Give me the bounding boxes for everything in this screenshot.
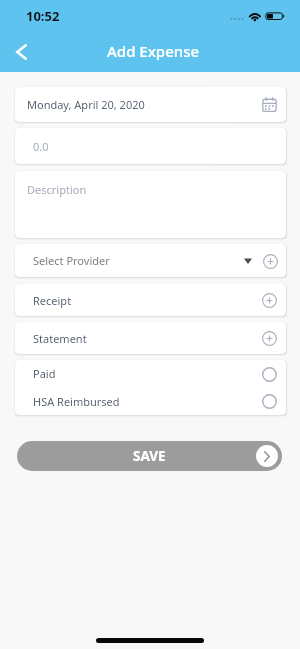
staticText: Monday, April 20, 2020 xyxy=(27,97,145,112)
staticText: Add Expense xyxy=(107,41,200,61)
button[interactable]: Select xyxy=(259,391,279,411)
button[interactable]: Back xyxy=(0,31,42,73)
button[interactable]: Paid xyxy=(33,360,279,387)
staticText: 10:52 xyxy=(26,7,60,25)
button[interactable]: Statement xyxy=(15,322,286,354)
button[interactable]: Select xyxy=(259,364,279,384)
button[interactable]: Paid xyxy=(15,360,286,415)
staticText: Select Provider xyxy=(33,253,110,268)
button[interactable]: HSA Reimbursed xyxy=(33,387,279,415)
button[interactable]: Select Provider xyxy=(15,244,286,277)
button[interactable]: Open provider list xyxy=(237,247,259,275)
staticText: Paid xyxy=(33,366,56,381)
button[interactable]: Monday, April 20, 2020 xyxy=(15,87,286,122)
staticText: 0.0 xyxy=(33,139,49,154)
staticText: HSA Reimbursed xyxy=(33,394,120,409)
button[interactable]: Add xyxy=(259,290,279,310)
button[interactable]: Receipt xyxy=(15,284,286,316)
button[interactable]: Description xyxy=(15,171,286,238)
staticText: Description xyxy=(27,182,87,197)
button[interactable]: Add xyxy=(260,251,280,271)
button[interactable]: Add xyxy=(259,328,279,348)
button[interactable]: 0.0 xyxy=(15,128,286,164)
staticText: SAVE xyxy=(133,447,166,465)
staticText: Statement xyxy=(33,331,87,346)
staticText: Receipt xyxy=(33,293,72,308)
button[interactable]: SAVE xyxy=(17,441,282,471)
